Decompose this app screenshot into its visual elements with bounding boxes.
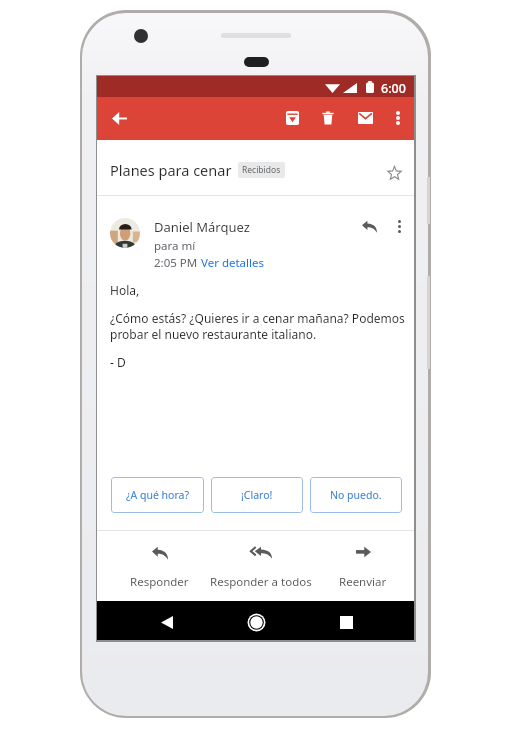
staticText: Recibidos xyxy=(242,164,281,176)
button[interactable]: Reenviar xyxy=(312,531,414,601)
staticText: probar el nuevo restaurante italiano. xyxy=(110,326,317,342)
staticText: ¿Cómo estás? ¿Quieres ir a cenar mañana?… xyxy=(110,310,405,326)
staticText: Planes para cenar xyxy=(110,160,232,180)
button[interactable]: ¿A qué hora? xyxy=(111,477,204,513)
staticText: 2:05 PM xyxy=(154,255,201,271)
staticText: 6:00 xyxy=(381,80,406,97)
staticText: - D xyxy=(110,354,126,370)
staticText: Hola, xyxy=(110,282,140,298)
button[interactable]: Back xyxy=(150,606,183,639)
button[interactable]: Archive xyxy=(273,99,311,137)
button[interactable]: Recents xyxy=(330,606,363,639)
staticText: ¡Claro! xyxy=(241,488,273,502)
button[interactable]: Home xyxy=(239,605,273,639)
staticText: No puedo. xyxy=(330,488,382,502)
button[interactable]: More xyxy=(386,213,412,239)
button[interactable]: Star xyxy=(380,159,408,187)
button[interactable]: Responder xyxy=(109,531,210,601)
button[interactable]: ¡Claro! xyxy=(211,477,303,513)
button[interactable]: Delete xyxy=(309,99,347,137)
staticText: Daniel Márquez xyxy=(154,218,250,236)
button[interactable]: More options xyxy=(382,101,413,135)
staticText: para mí xyxy=(154,238,196,254)
staticText: ¿A qué hora? xyxy=(126,488,190,502)
button[interactable]: No puedo. xyxy=(310,477,402,513)
button[interactable]: Ver detalles xyxy=(201,255,264,271)
staticText: Reenviar xyxy=(339,574,387,590)
button[interactable]: Back xyxy=(100,99,138,137)
staticText: Responder xyxy=(130,574,189,590)
button[interactable]: Mark unread xyxy=(346,99,384,137)
button[interactable]: Responder a todos xyxy=(210,531,312,601)
staticText: Responder a todos xyxy=(210,574,312,590)
button[interactable]: Reply xyxy=(356,213,382,239)
